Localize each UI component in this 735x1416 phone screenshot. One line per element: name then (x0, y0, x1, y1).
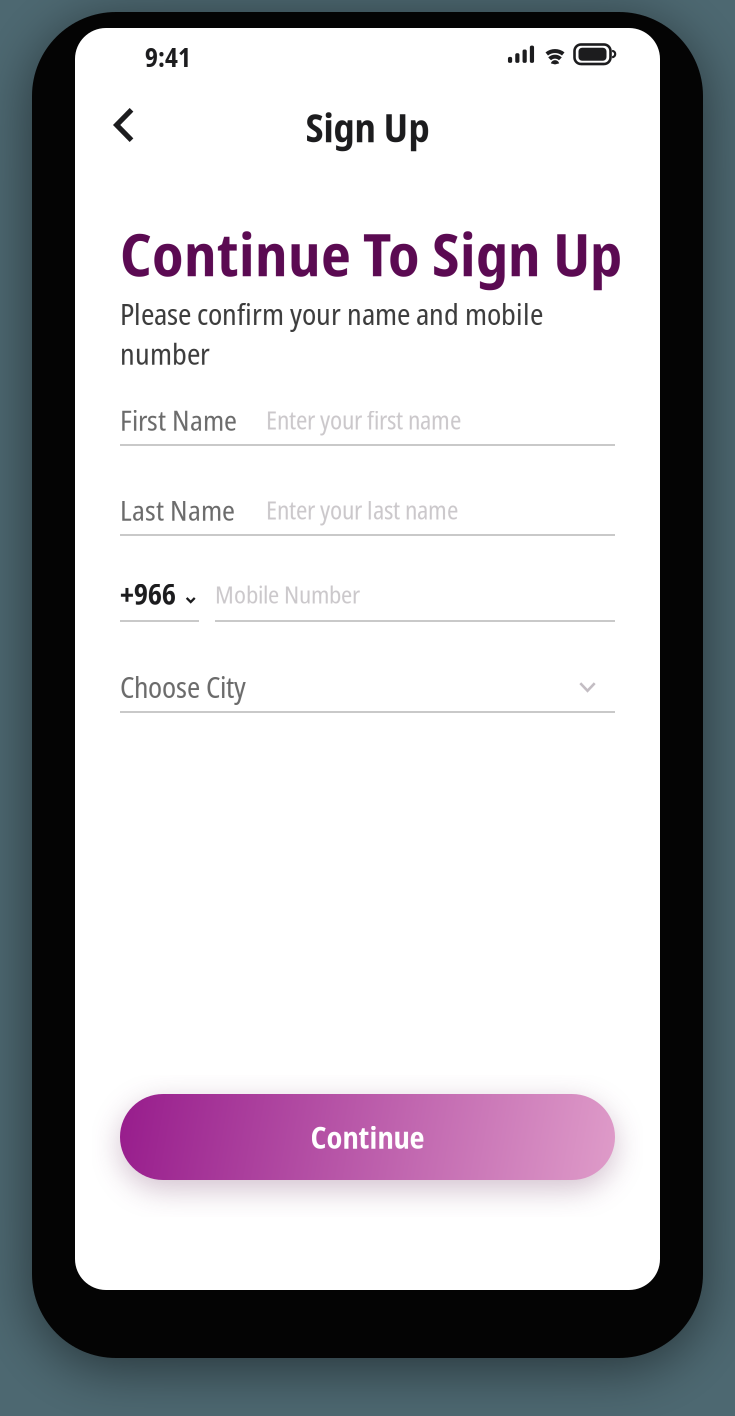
staticText: Enter your last name (266, 493, 458, 527)
button[interactable]: +966 (120, 576, 199, 622)
staticText: Last Name (120, 491, 235, 529)
staticText: Enter your first name (266, 403, 461, 437)
staticText: Choose City (120, 667, 246, 706)
staticText: +966 (120, 575, 176, 613)
button[interactable]: Choose City (120, 667, 615, 713)
staticText: Sign Up (305, 100, 429, 154)
staticText: 9:41 (145, 39, 191, 75)
staticText: Please confirm your name and mobile numb… (120, 294, 543, 373)
staticText: Continue To Sign Up (120, 212, 622, 294)
staticText: Mobile Number (215, 577, 360, 611)
staticText: First Name (120, 401, 237, 439)
staticText: Continue (310, 1117, 424, 1157)
button[interactable]: Continue (120, 1094, 615, 1180)
button[interactable]: Back (93, 94, 155, 156)
